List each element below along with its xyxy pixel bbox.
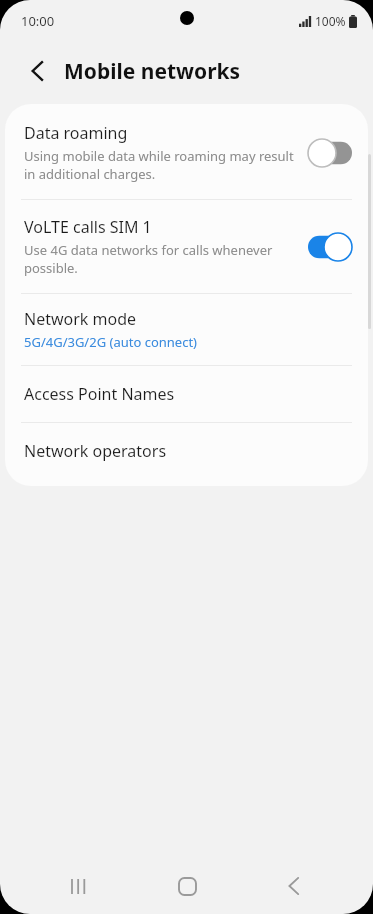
staticText: Using mobile data while roaming may resu… (24, 147, 294, 183)
staticText: 100% (315, 13, 346, 29)
staticText: Use 4G data networks for calls whenever … (24, 241, 294, 277)
button[interactable]: Off (308, 139, 352, 167)
staticText: 5G/4G/3G/2G (auto connect) (24, 333, 197, 351)
button[interactable]: Access Point Names (5, 366, 368, 422)
staticText: Data roaming (24, 122, 128, 144)
staticText: Network mode (24, 308, 137, 330)
button[interactable]: Home (159, 858, 215, 914)
button[interactable]: Back (266, 858, 322, 914)
staticText: Mobile networks (64, 57, 241, 86)
button[interactable]: Network mode (5, 294, 368, 365)
button[interactable]: Data roaming (5, 104, 368, 199)
button[interactable]: VoLTE calls SIM 1 (5, 200, 368, 293)
staticText: Access Point Names (24, 383, 175, 405)
staticText: VoLTE calls SIM 1 (24, 216, 152, 238)
staticText: Network operators (24, 440, 167, 462)
button[interactable]: Back (18, 52, 56, 90)
button[interactable]: Network operators (5, 423, 368, 486)
button[interactable]: Recents (51, 858, 107, 914)
button[interactable]: On (308, 233, 352, 261)
staticText: 10:00 (21, 12, 55, 30)
